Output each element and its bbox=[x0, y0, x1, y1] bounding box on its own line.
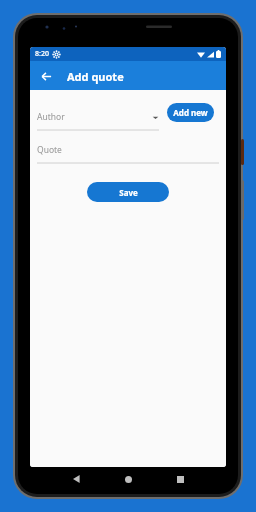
button[interactable]: Add new bbox=[167, 103, 214, 122]
button[interactable]: Quote bbox=[37, 137, 219, 163]
staticText: Add new bbox=[173, 107, 208, 118]
staticText: Quote bbox=[37, 144, 62, 156]
staticText: Save bbox=[119, 187, 138, 198]
button[interactable]: Home bbox=[120, 471, 136, 487]
button[interactable]: Recent apps bbox=[172, 471, 188, 487]
button[interactable]: Save bbox=[87, 182, 169, 202]
staticText: Author bbox=[37, 111, 65, 123]
button[interactable]: Author bbox=[37, 104, 159, 130]
button[interactable]: Back bbox=[68, 471, 84, 487]
staticText: Add quote bbox=[67, 69, 124, 84]
staticText: 8:20 bbox=[35, 49, 49, 59]
button[interactable]: Back bbox=[37, 67, 55, 85]
